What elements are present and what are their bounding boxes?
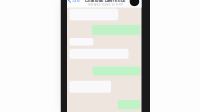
button[interactable]: Contact info	[130, 0, 139, 6]
button[interactable]: Back to chats	[67, 0, 80, 3]
staticText: last seen today at 11:40	[88, 3, 123, 6]
staticText: 126	[72, 0, 80, 3]
staticText: Charlotte Lawrence	[85, 0, 126, 3]
